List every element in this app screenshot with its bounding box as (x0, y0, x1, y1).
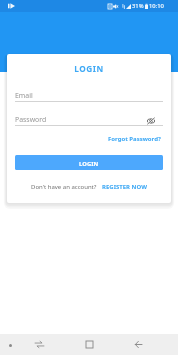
button[interactable]: Switch apps (28, 334, 50, 355)
button[interactable]: LOGIN (15, 155, 163, 170)
button[interactable]: Forgot Password? (108, 135, 161, 143)
staticText: Email (15, 91, 33, 100)
staticText: 31% (132, 2, 144, 10)
button[interactable]: Show password (145, 115, 157, 127)
button[interactable]: Recent apps (78, 334, 100, 355)
button[interactable]: REGISTER NOW (102, 183, 147, 191)
staticText: 10:10 (149, 2, 164, 10)
button[interactable]: Back (127, 334, 149, 355)
staticText: Don't have an account? (31, 183, 97, 191)
staticText: Password (15, 115, 47, 124)
staticText: LOGIN (79, 160, 99, 168)
button[interactable]: Keyboard indicator (5, 340, 15, 350)
staticText: LOGIN (7, 63, 171, 74)
